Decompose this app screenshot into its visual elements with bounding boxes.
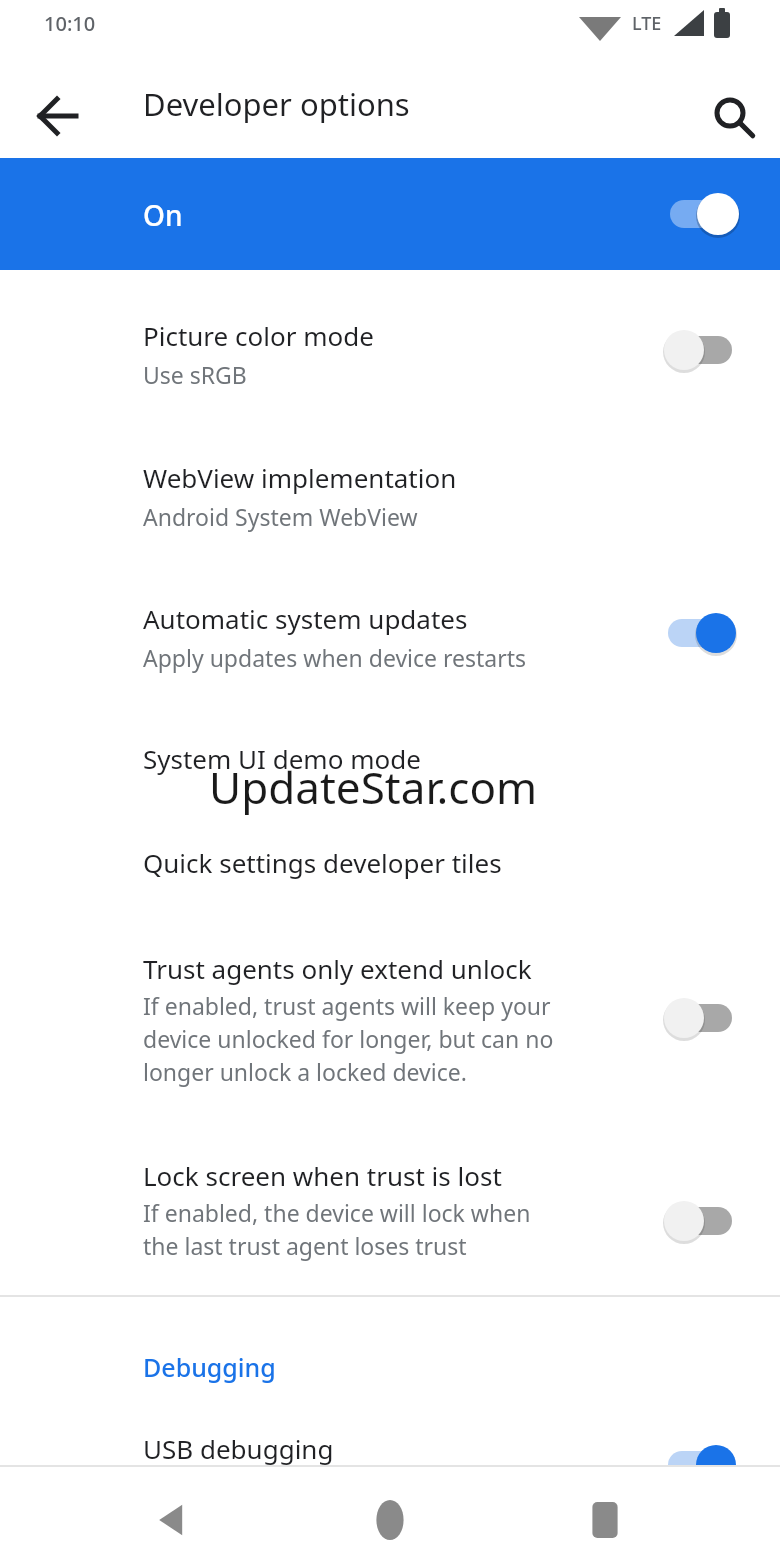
staticText: Lock screen when trust is lost	[143, 1158, 502, 1193]
button[interactable]: Automatic system updates	[0, 573, 780, 703]
staticText: LTE	[632, 11, 662, 36]
staticText: Android System WebView	[143, 501, 418, 532]
staticText: If enabled, trust agents will keep your …	[143, 990, 643, 1088]
button[interactable]: Home	[345, 1475, 435, 1560]
button[interactable]: Toggle off	[656, 1193, 740, 1249]
button[interactable]: Debugging	[143, 1350, 276, 1384]
button[interactable]: Trust agents only extend unlock	[0, 930, 780, 1100]
button[interactable]: Back	[20, 79, 94, 153]
staticText: Quick settings developer tiles	[143, 845, 502, 880]
staticText: Automatic system updates	[143, 601, 468, 636]
button[interactable]: Lock screen when trust is lost	[0, 1140, 780, 1280]
button[interactable]: Developer options on	[662, 186, 746, 242]
button[interactable]: Toggle off	[656, 990, 740, 1046]
staticText: UpdateStar.com	[209, 757, 538, 817]
button[interactable]: USB debugging	[0, 1425, 780, 1465]
button[interactable]: Picture color mode	[0, 290, 780, 420]
button[interactable]: Recent apps	[560, 1475, 650, 1560]
button[interactable]: On	[0, 158, 780, 270]
staticText: USB debugging	[143, 1431, 334, 1466]
button[interactable]: Back	[128, 1475, 218, 1560]
staticText: If enabled, the device will lock when th…	[143, 1197, 643, 1262]
button[interactable]: Toggle off	[656, 322, 740, 378]
staticText: Picture color mode	[143, 318, 374, 353]
staticText: 10:10	[44, 10, 96, 37]
staticText: Developer options	[143, 83, 410, 125]
button[interactable]: Search	[696, 79, 770, 153]
staticText: On	[143, 196, 183, 234]
staticText: Trust agents only extend unlock	[143, 951, 532, 986]
button[interactable]: Quick settings developer tiles	[0, 828, 780, 904]
staticText: WebView implementation	[143, 460, 457, 495]
button[interactable]: WebView implementation	[0, 432, 780, 562]
staticText: Apply updates when device restarts	[143, 642, 527, 673]
staticText: System UI demo mode	[143, 741, 421, 776]
staticText: Use sRGB	[143, 359, 247, 390]
button[interactable]: Toggle on	[660, 605, 744, 661]
button[interactable]: System UI demo mode	[0, 724, 780, 800]
